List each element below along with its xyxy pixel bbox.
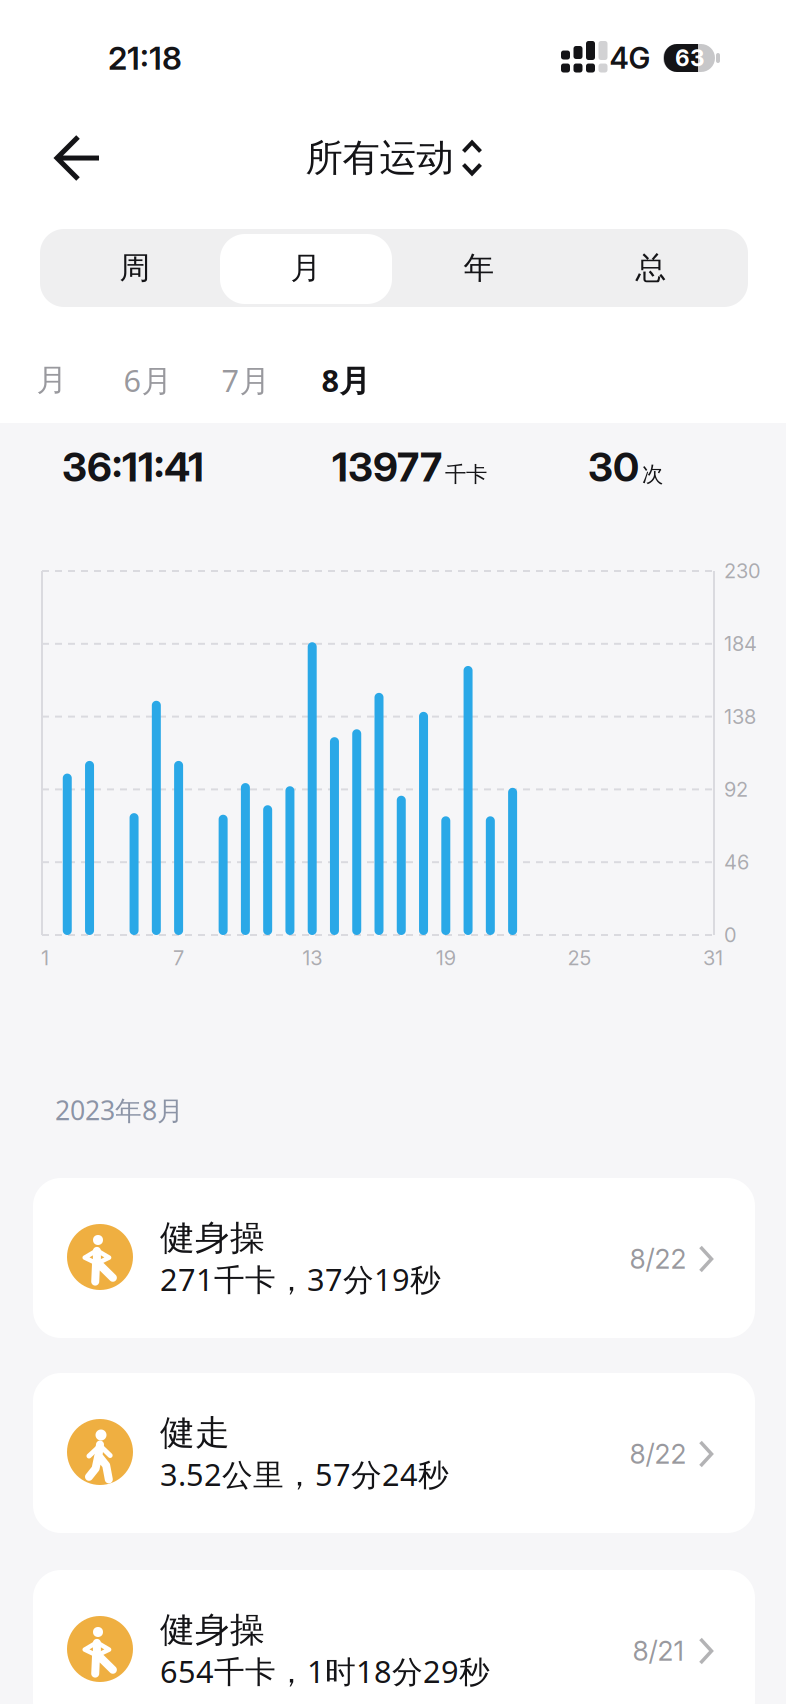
staticText: 13 [302,946,322,970]
staticText: 63 [675,44,705,72]
button[interactable]: 7月 [206,348,286,412]
staticText: 2023年8月 [55,1092,184,1128]
staticText: 3.52公里，57分24秒 [160,1454,449,1494]
staticText: 138 [724,704,756,729]
button[interactable] [57,136,99,180]
staticText: 4G [609,40,650,76]
button[interactable]: 8月 [306,348,386,412]
staticText: 7月 [221,360,270,400]
staticText: 8/22 [629,1438,686,1470]
staticText: 13977 [332,443,442,491]
staticText: 健身操 [160,1609,265,1651]
staticText: 36:11:41 [62,443,204,491]
button[interactable]: 月 [14,348,90,412]
staticText: 31 [703,946,723,970]
staticText: 46 [724,850,749,874]
button[interactable]: 月 [220,229,391,307]
staticText: 184 [724,632,757,656]
staticText: 月 [36,361,67,399]
staticText: 总 [635,249,666,287]
staticText: 8/21 [632,1635,683,1667]
button[interactable]: 总 [565,229,736,307]
staticText: 所有运动 [305,135,453,181]
staticText: 19 [436,946,456,970]
button[interactable]: 健走 [33,1373,755,1533]
staticText: 千卡 [445,461,487,487]
staticText: 654千卡，1时18分29秒 [160,1651,490,1691]
staticText: 次 [642,461,663,487]
button[interactable]: 年 [393,229,564,307]
staticText: 8月 [321,360,370,400]
staticText: 30 [588,443,639,491]
staticText: 271千卡，37分19秒 [160,1259,441,1299]
staticText: 健走 [160,1412,230,1454]
staticText: 月 [290,249,321,287]
staticText: 21:18 [108,39,182,77]
staticText: 8/22 [629,1243,686,1275]
staticText: 25 [567,946,591,970]
staticText: 0 [724,923,737,947]
staticText: 周 [119,249,150,287]
button[interactable]: 健身操 [33,1570,755,1704]
staticText: 健身操 [160,1217,265,1259]
button[interactable]: 所有运动 [305,135,480,181]
button[interactable]: 周 [49,229,220,307]
staticText: 7 [173,946,184,970]
staticText: 1 [41,946,49,970]
button[interactable]: 6月 [108,348,188,412]
staticText: 年 [463,249,494,287]
staticText: 6月 [123,360,172,400]
staticText: 92 [724,777,748,801]
staticText: 230 [724,559,761,583]
button[interactable]: 健身操 [33,1178,755,1338]
